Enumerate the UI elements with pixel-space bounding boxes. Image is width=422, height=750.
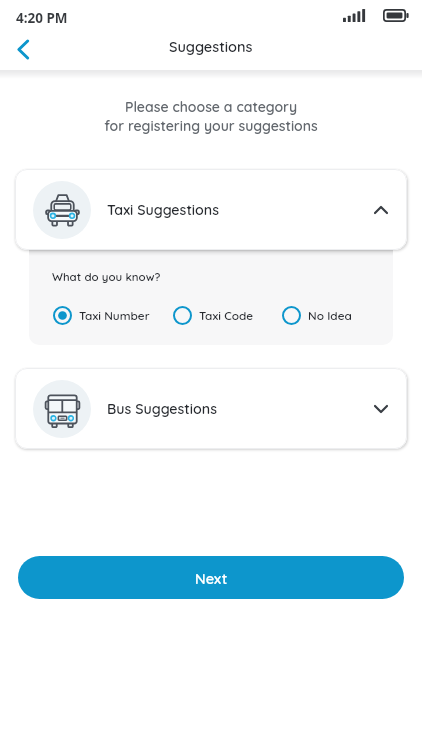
staticText: Taxi Number <box>79 308 150 323</box>
staticText: Suggestions <box>169 37 253 55</box>
button[interactable]: Taxi Suggestions <box>15 169 407 250</box>
button[interactable]: Taxi Code <box>169 301 258 330</box>
staticText: Please choose a category for registering… <box>0 98 422 135</box>
button[interactable]: Bus Suggestions <box>15 368 407 449</box>
button[interactable]: Next <box>18 556 404 599</box>
staticText: Bus Suggestions <box>107 400 217 418</box>
button[interactable]: Back <box>4 27 48 65</box>
staticText: Taxi Suggestions <box>107 201 220 219</box>
button[interactable]: Taxi Number <box>49 301 154 330</box>
staticText: 4:20 PM <box>16 9 68 27</box>
button[interactable]: No Idea <box>278 301 356 330</box>
staticText: No Idea <box>308 308 352 323</box>
staticText: Next <box>195 569 228 587</box>
staticText: Taxi Code <box>199 308 254 323</box>
staticText: What do you know? <box>52 269 161 283</box>
